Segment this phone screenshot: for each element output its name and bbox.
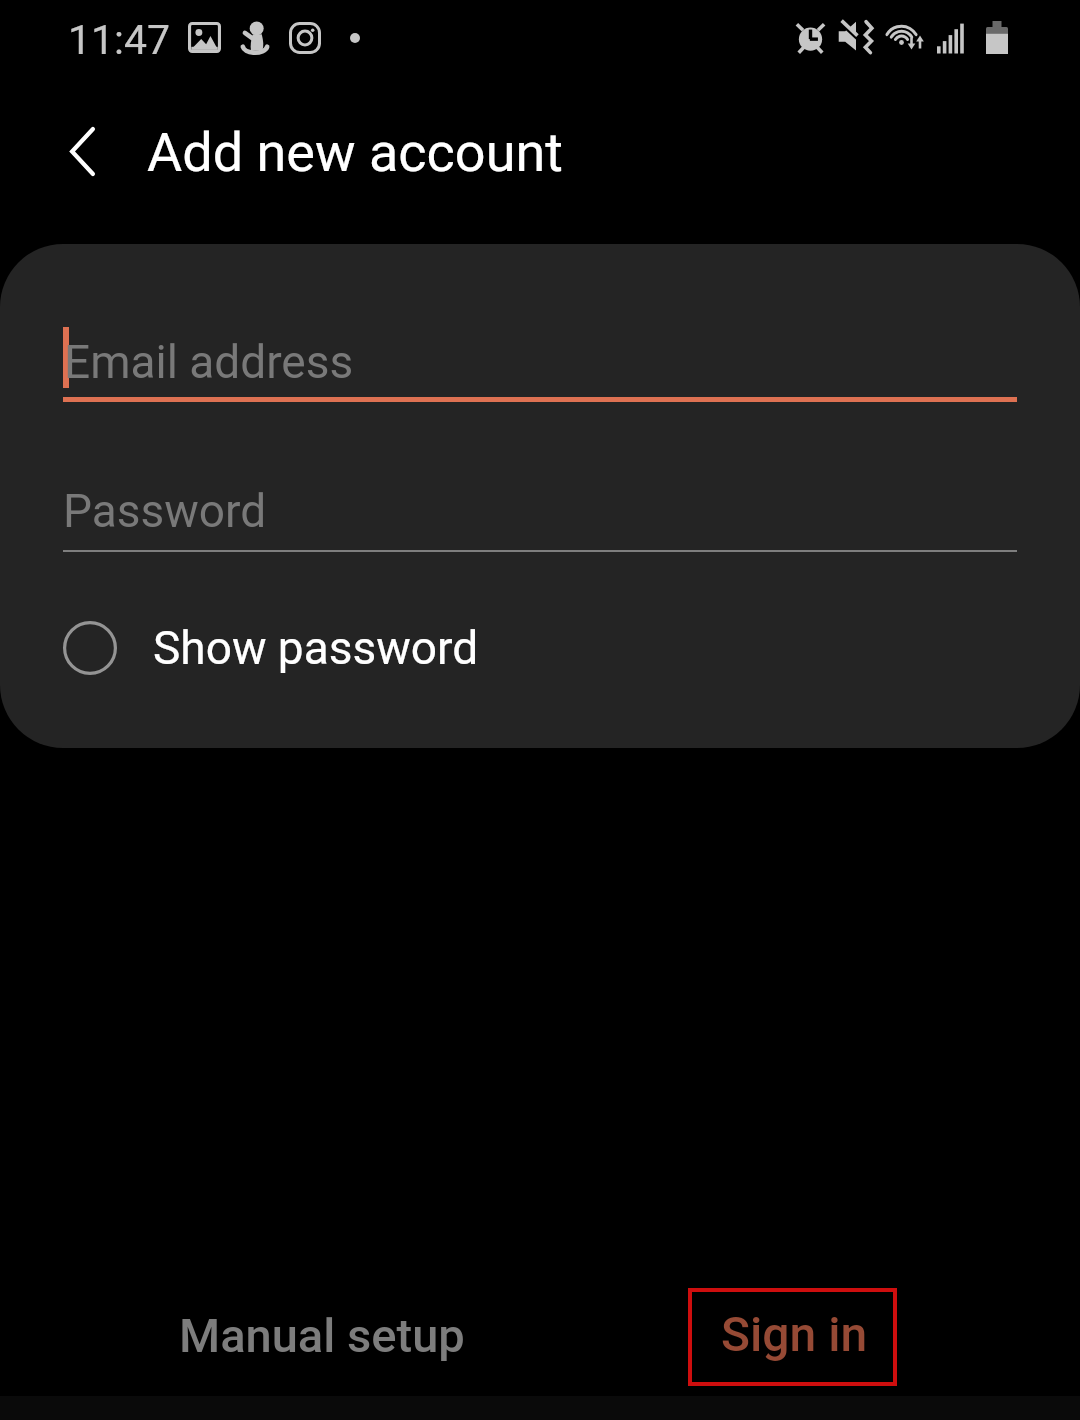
button[interactable]: Manual setup: [161, 1296, 483, 1375]
staticText: Email address: [64, 335, 354, 389]
staticText: Manual setup: [179, 1308, 465, 1363]
button[interactable]: Show password: [52, 608, 532, 688]
staticText: Show password: [153, 621, 479, 675]
staticText: 11:47: [68, 16, 171, 64]
staticText: Password: [63, 484, 267, 538]
button[interactable]: Sign in: [703, 1294, 886, 1374]
staticText: Sign in: [721, 1306, 868, 1362]
staticText: Add new account: [147, 121, 563, 184]
button[interactable]: Email address: [63, 304, 1017, 402]
button[interactable]: Password: [63, 470, 1017, 550]
button[interactable]: Navigate up: [40, 109, 124, 193]
